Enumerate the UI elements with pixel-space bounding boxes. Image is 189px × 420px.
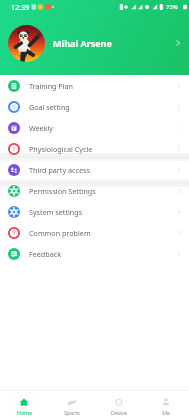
button[interactable]: Permission Settings [0,180,189,201]
staticText: Physiological Cycle [29,144,93,154]
staticText: Sports [64,409,80,416]
button[interactable]: Training Plan [0,75,189,96]
button[interactable]: Physiological Cycle [0,138,189,159]
button[interactable]: Common problem [0,222,189,243]
button[interactable]: Third party access [0,159,189,180]
staticText: 12:39 [11,3,29,13]
staticText: Mihai Arsene [53,37,112,49]
staticText: Common problem [29,228,91,238]
staticText: Training Plan [29,81,74,91]
button[interactable]: Home [0,391,48,420]
button[interactable]: Weekly [0,117,189,138]
staticText: Third party access [29,165,90,175]
button[interactable]: Device [95,391,142,420]
button[interactable]: Feedback [0,243,189,264]
button[interactable]: Goal setting [0,96,189,117]
staticText: Feedback [29,249,61,259]
staticText: System settings [29,207,83,217]
button[interactable]: Sports [48,391,95,420]
staticText: Permission Settings [29,186,96,196]
button[interactable]: Me [142,391,189,420]
staticText: Me [162,409,170,416]
staticText: Weekly [29,123,54,133]
staticText: Home [17,409,32,416]
staticText: 75% [166,3,178,11]
staticText: Device [111,409,127,416]
button[interactable]: System settings [0,201,189,222]
other: Profile [173,38,183,48]
staticText: Goal setting [29,102,70,112]
